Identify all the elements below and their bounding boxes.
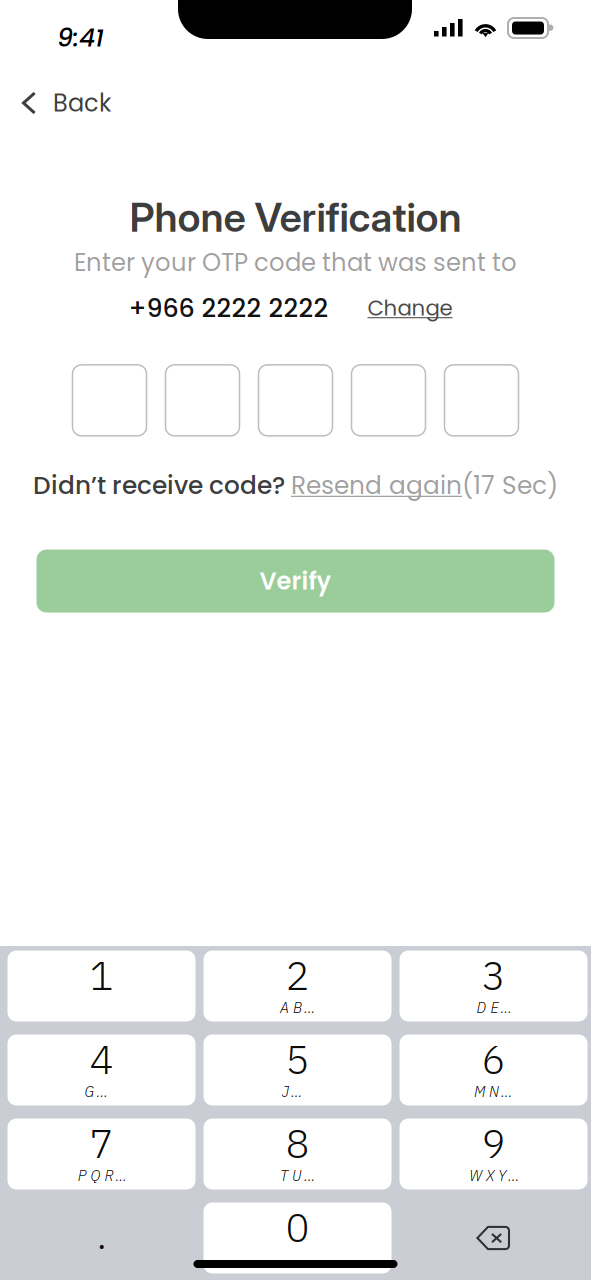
staticText: Resend again	[291, 468, 462, 502]
button[interactable]: Back	[0, 77, 129, 129]
button[interactable]: Delete	[399, 1202, 587, 1273]
staticText: Verify	[259, 564, 331, 598]
staticText: ABC	[280, 998, 315, 1017]
button[interactable]: Decimal point	[7, 1202, 195, 1273]
staticText: Back	[53, 86, 111, 120]
staticText: 9:41	[57, 20, 104, 55]
staticText: 1	[89, 949, 113, 1001]
staticText: (17 Sec)	[462, 468, 558, 502]
staticText: DEF	[477, 998, 510, 1017]
button[interactable]: 9	[399, 1118, 587, 1189]
staticText: 9	[481, 1117, 505, 1169]
staticText: JKL	[282, 1082, 313, 1101]
staticText: 4	[89, 1033, 113, 1085]
staticText: Phone Verification	[129, 193, 461, 241]
button[interactable]: Verify	[36, 550, 554, 613]
button[interactable]: 8	[203, 1118, 391, 1189]
button[interactable]: 2	[203, 950, 391, 1021]
button[interactable]: 0	[203, 1202, 391, 1273]
button[interactable]: 6	[399, 1034, 587, 1105]
staticText: 2	[285, 949, 309, 1001]
staticText: WXYZ	[469, 1166, 518, 1185]
staticText: 3	[481, 949, 505, 1001]
staticText: MNO	[474, 1082, 513, 1101]
button[interactable]: Resend again	[291, 468, 462, 502]
staticText: TUV	[280, 1166, 315, 1185]
button[interactable]: 3	[399, 950, 587, 1021]
staticText: 8	[285, 1117, 309, 1169]
staticText: 0	[285, 1201, 309, 1253]
staticText: +966 2222 2222	[128, 290, 328, 326]
button[interactable]: Change	[367, 293, 452, 323]
staticText: .	[96, 1208, 106, 1260]
staticText: Didn’t receive code?	[33, 468, 291, 502]
button[interactable]: 7	[7, 1118, 195, 1189]
button[interactable]: 5	[203, 1034, 391, 1105]
staticText: Enter your OTP code that was sent to	[74, 245, 517, 279]
button[interactable]: 4	[7, 1034, 195, 1105]
staticText: 5	[285, 1033, 309, 1085]
staticText: GHI	[85, 1082, 118, 1101]
staticText: 7	[89, 1117, 113, 1169]
staticText: 6	[481, 1033, 505, 1085]
button[interactable]: 1	[7, 950, 195, 1021]
staticText: PQRS	[78, 1166, 125, 1185]
staticText: Change	[367, 293, 452, 323]
